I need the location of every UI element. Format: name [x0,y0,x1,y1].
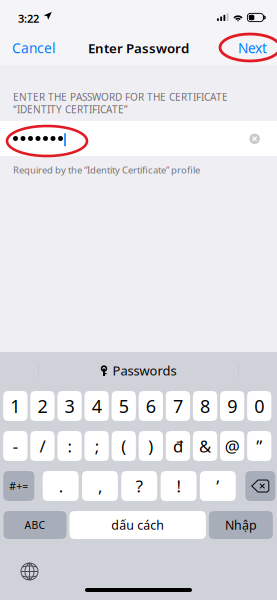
button[interactable]: 0 [247,391,271,421]
staticText: 0 [254,394,264,418]
button[interactable]: đ [166,431,190,461]
staticText: ) [148,435,153,457]
staticText: ’ [216,475,219,497]
staticText: . [59,475,63,497]
staticText: - [13,435,18,457]
button[interactable]: #+= [3,471,34,501]
button[interactable]: Next [227,34,267,62]
button[interactable]: 5 [112,391,136,421]
button[interactable]: 8 [193,391,217,421]
staticText: 6 [146,394,156,418]
staticText: 7 [173,394,183,418]
button[interactable]: 9 [220,391,244,421]
staticText: Passwords [113,362,177,379]
staticText: dấu cách [111,517,164,533]
button[interactable]: dấu cách [69,511,206,539]
staticText: / [39,435,45,457]
button[interactable]: : [57,431,82,461]
button[interactable]: & [193,431,217,461]
staticText: 5 [119,394,129,418]
button[interactable]: 3 [57,391,82,421]
staticText: 3:22 [18,11,39,26]
button[interactable]: 4 [84,391,109,421]
staticText: ; [95,435,99,457]
staticText: 9 [227,394,237,418]
button[interactable]: ) [139,431,163,461]
button[interactable]: Clear text [249,134,260,144]
button[interactable]: 6 [139,391,163,421]
button[interactable]: ’ [200,471,236,501]
button[interactable]: ” [247,431,271,461]
staticText: 2 [37,394,47,418]
button[interactable]: / [30,431,55,461]
staticText: Next [238,39,267,57]
button[interactable]: Next keyboard [15,558,44,585]
button[interactable]: @ [220,431,244,461]
staticText: ! [176,475,180,497]
staticText: , [98,475,102,497]
staticText: Required by the “Identity Certificate” p… [13,163,200,176]
button[interactable]: 1 [3,391,27,421]
staticText: & [199,435,211,457]
staticText: @ [225,435,240,457]
staticText: ” [256,435,262,457]
button[interactable]: ( [112,431,136,461]
button[interactable]: . [43,471,79,501]
button[interactable]: ? [121,471,157,501]
staticText: “IDENTITY CERTIFICATE” [13,102,128,116]
staticText: : [68,435,72,457]
button[interactable]: 2 [30,391,55,421]
button[interactable]: ! [161,471,196,501]
staticText: ? [136,475,143,497]
staticText: ABC [24,518,45,532]
button[interactable] [245,471,275,501]
staticText: Nhập [225,517,257,533]
staticText: 3 [65,394,75,418]
button[interactable]: Nhập [209,511,273,539]
staticText: ENTER THE PASSWORD FOR THE CERTIFICATE [13,90,228,104]
button[interactable]: ; [84,431,109,461]
staticText: ( [121,435,126,457]
button[interactable]: , [82,471,118,501]
button[interactable]: ABC [3,511,66,539]
staticText: 8 [200,394,210,418]
staticText: #+= [9,479,28,493]
button[interactable]: - [3,431,27,461]
staticText: Cancel [12,39,56,57]
staticText: 1 [10,394,20,418]
staticText: 4 [92,394,102,418]
button[interactable]: Cancel [12,34,68,62]
staticText: đ [173,435,183,457]
button[interactable]: 7 [166,391,190,421]
staticText: Enter Password [88,39,189,57]
